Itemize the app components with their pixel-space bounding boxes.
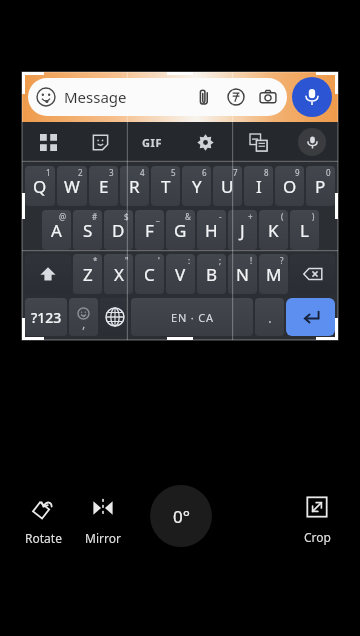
button[interactable]: R [120, 166, 149, 206]
button[interactable]: U [213, 166, 242, 206]
button[interactable]: Attach [195, 88, 213, 106]
button[interactable]: Change language [100, 298, 129, 336]
button[interactable]: Camera [259, 88, 277, 106]
staticText: EN · CA [171, 310, 214, 325]
staticText: G [174, 219, 187, 242]
button[interactable]: Voice input [285, 122, 338, 162]
button[interactable]: T [151, 166, 180, 206]
button[interactable]: Stickers [74, 122, 126, 162]
staticText: 5 [171, 167, 176, 178]
staticText: ! [250, 255, 253, 266]
button[interactable]: K [259, 210, 288, 250]
button[interactable]: Space [131, 298, 253, 336]
button[interactable]: F [135, 210, 164, 250]
other: Voice input [298, 128, 326, 156]
staticText: 4 [140, 167, 145, 178]
button[interactable]: V [166, 254, 195, 294]
staticText: 3 [109, 167, 114, 178]
button[interactable]: Settings [179, 122, 232, 162]
staticText: $ [124, 211, 129, 222]
button[interactable]: Crop [284, 484, 350, 560]
staticText: - [219, 211, 222, 222]
staticText: Q [33, 175, 47, 198]
button[interactable]: ?123 [25, 298, 67, 336]
button[interactable]: D [104, 210, 133, 250]
staticText: ? [280, 255, 284, 266]
button[interactable]: Apps [22, 122, 74, 162]
button[interactable]: C [135, 254, 164, 294]
staticText: C [144, 263, 155, 286]
staticText: U [221, 175, 234, 198]
staticText: GIF [142, 135, 163, 150]
button[interactable]: 0° [150, 485, 212, 547]
button[interactable]: Shift [25, 254, 71, 294]
button[interactable]: E [89, 166, 118, 206]
button[interactable]: W [57, 166, 87, 206]
button[interactable]: O [275, 166, 304, 206]
button[interactable]: L [290, 210, 319, 250]
other: Translate [250, 134, 267, 151]
staticText: _ [156, 211, 160, 222]
staticText: ; [219, 255, 222, 266]
staticText: & [185, 211, 191, 222]
staticText: R [129, 175, 140, 198]
button[interactable]: Z [73, 254, 102, 294]
staticText: ( [281, 211, 284, 222]
staticText: 6 [202, 167, 207, 178]
staticText: Crop [304, 529, 331, 545]
button[interactable]: Send money [227, 88, 245, 106]
button[interactable]: Q [25, 166, 55, 206]
staticText: H [205, 219, 218, 242]
button[interactable]: Period [255, 298, 284, 336]
button[interactable]: Backspace [290, 254, 335, 294]
button[interactable]: Emoji [28, 78, 287, 116]
staticText: W [64, 175, 80, 198]
staticText: T [161, 175, 171, 198]
staticText: 0° [173, 505, 190, 528]
staticText: , [82, 314, 86, 332]
button[interactable]: B [197, 254, 226, 294]
staticText: X [114, 263, 124, 286]
button[interactable]: J [228, 210, 257, 250]
staticText: L [300, 219, 309, 242]
button[interactable]: Translate [232, 122, 285, 162]
button[interactable]: Mirror [70, 484, 136, 560]
staticText: 8 [264, 167, 269, 178]
staticText: 9 [295, 167, 300, 178]
button[interactable]: Y [182, 166, 211, 206]
staticText: M [266, 263, 282, 286]
staticText: 2 [78, 167, 83, 178]
button[interactable]: M [259, 254, 288, 294]
staticText: V [175, 263, 186, 286]
button[interactable]: P [306, 166, 335, 206]
staticText: Rotate [25, 530, 62, 546]
button[interactable]: GIF [126, 122, 179, 162]
staticText: Message [64, 87, 127, 107]
staticText: Y [192, 175, 202, 198]
staticText: J [240, 219, 245, 242]
other: Apps [40, 134, 57, 151]
staticText: Z [83, 263, 93, 286]
button[interactable]: X [104, 254, 133, 294]
button[interactable]: I [244, 166, 273, 206]
button[interactable]: Emoji [36, 87, 56, 107]
button[interactable]: Enter [286, 298, 335, 336]
staticText: ' [158, 255, 160, 266]
button[interactable]: Comma [69, 298, 98, 336]
staticText: I [256, 175, 262, 198]
staticText: B [206, 263, 218, 286]
button[interactable]: Rotate [10, 484, 76, 560]
button[interactable]: S [73, 210, 102, 250]
staticText: " [125, 255, 129, 266]
staticText: O [283, 175, 297, 198]
other: Stickers [92, 134, 109, 151]
staticText: P [315, 175, 326, 198]
staticText: * [93, 255, 98, 266]
button[interactable]: H [197, 210, 226, 250]
button[interactable]: G [166, 210, 195, 250]
button[interactable]: Voice message [292, 77, 332, 117]
staticText: @ [59, 211, 67, 222]
button[interactable]: N [228, 254, 257, 294]
button[interactable]: A [42, 210, 71, 250]
staticText: N [236, 263, 249, 286]
